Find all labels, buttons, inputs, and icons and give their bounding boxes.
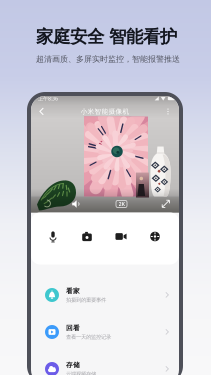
button[interactable]: 方向控制: [143, 224, 167, 248]
staticText: 存储: [66, 361, 80, 369]
button[interactable]: 声音: [69, 198, 83, 210]
staticText: 超清画质、多屏实时监控，智能报警推送: [36, 54, 180, 64]
staticText: 上午8:36: [38, 95, 58, 102]
button[interactable]: 返回: [35, 104, 49, 118]
button[interactable]: 截图: [75, 224, 99, 248]
button[interactable]: 对讲: [41, 224, 65, 248]
staticText: 云端视频存储: [66, 371, 96, 375]
button[interactable]: 存储: [31, 350, 179, 375]
button[interactable]: 全屏: [160, 198, 172, 210]
button[interactable]: 2K: [116, 200, 127, 207]
staticText: 家庭安全 智能看护: [36, 26, 177, 47]
button[interactable]: 看家: [31, 276, 179, 313]
staticText: 拍摄到的重要事件: [66, 297, 106, 303]
button[interactable]: 更多: [161, 104, 175, 118]
staticText: 回看: [66, 324, 80, 332]
button[interactable]: 录像: [109, 224, 133, 248]
staticText: 看家: [66, 287, 80, 295]
staticText: 2K: [118, 200, 124, 208]
button[interactable]: 回看: [31, 313, 179, 350]
staticText: 查看一天的监控记录: [66, 334, 111, 340]
staticText: 小米智能摄像机: [80, 107, 129, 116]
